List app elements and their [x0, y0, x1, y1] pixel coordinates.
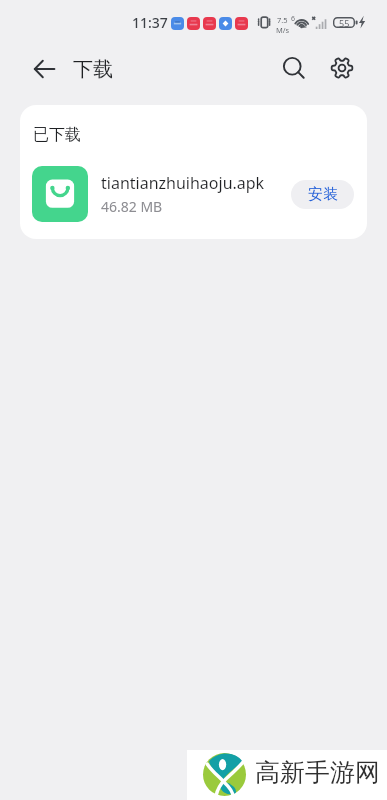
staticText: 6	[291, 14, 296, 24]
button[interactable]: Back	[22, 47, 66, 91]
staticText: 55	[339, 17, 350, 28]
staticText: tiantianzhuihaoju.apk	[101, 172, 265, 194]
staticText: 高新手游网	[255, 757, 380, 788]
staticText: 已下载	[33, 125, 81, 145]
button[interactable]: Search	[272, 46, 316, 90]
staticText: 46.82 MB	[101, 197, 163, 216]
button[interactable]: 安装	[291, 180, 354, 209]
button[interactable]: tiantianzhuihaoju.apk	[20, 163, 367, 225]
staticText: 安装	[308, 185, 338, 204]
staticText: 7.5	[277, 15, 288, 25]
staticText: 11:37	[132, 13, 168, 32]
staticText: M/s	[276, 25, 290, 35]
staticText: 下载	[73, 57, 113, 82]
button[interactable]: Settings	[320, 46, 364, 90]
